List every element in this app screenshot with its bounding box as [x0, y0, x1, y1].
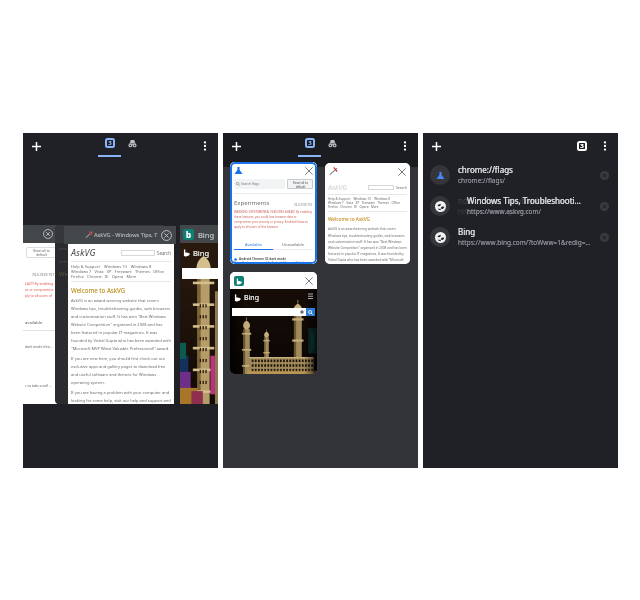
button[interactable]: Close tab [301, 273, 317, 289]
staticText: Reset all to default [33, 249, 50, 257]
staticText: Search [396, 185, 407, 190]
staticText: Help & Support Windows 10 Windows 8 [328, 197, 391, 201]
staticText: Bing [198, 230, 215, 240]
staticText: ontics [59, 259, 71, 264]
button[interactable]: Bing tab [230, 272, 317, 374]
staticText: https://www.bing.com/?toWww=1&redig=C… [458, 238, 592, 247]
button[interactable]: AskVG tab [325, 163, 410, 264]
button[interactable]: More options [392, 133, 418, 159]
staticText: AskVG is an award winning website that c… [71, 298, 171, 351]
button[interactable]: Bing tab [180, 225, 218, 404]
button[interactable]: Tabs [569, 133, 595, 159]
button[interactable]: New tab [223, 133, 249, 159]
button[interactable]: ndows Tips, Troubleshooti… [423, 190, 618, 221]
staticText: LAZY! By enabling se or compromise ply t… [25, 281, 54, 298]
staticText: ndows Tips, Troubleshooti… [458, 195, 563, 206]
staticText: Search flags [241, 182, 260, 186]
staticText: AskVG is an award winning website that c… [328, 227, 407, 264]
button[interactable]: Close tab [597, 168, 611, 182]
staticText: r so tabs scroll ... [25, 383, 52, 388]
staticText: Reset all to default [293, 181, 308, 188]
button[interactable]: Close tab [301, 163, 317, 179]
staticText: 3 [580, 142, 584, 150]
button[interactable]: Experiments tab [230, 162, 317, 264]
button[interactable]: Close tab [40, 226, 56, 242]
staticText: Bing [193, 248, 210, 258]
staticText: Welcome to AskVG [71, 286, 126, 294]
button[interactable]: Close tab [597, 230, 611, 244]
staticText: Windows Tips, Troubleshooti… [467, 195, 581, 206]
button[interactable]: More options [192, 133, 218, 159]
button[interactable]: New tab [423, 133, 449, 159]
button[interactable]: chrome://flags [423, 159, 618, 190]
staticText: AskVG - Windows Tips, T [94, 231, 158, 239]
button[interactable]: More options [592, 133, 618, 159]
staticText: 74.0.3729.157 [294, 203, 313, 207]
staticText: Bing [244, 293, 259, 303]
staticText: WARNING: EXPERIMENTAL FEATURES AHEAD! By… [234, 210, 313, 229]
button[interactable]: Tabs [97, 133, 123, 156]
staticText: available [25, 320, 43, 326]
button[interactable]: Experiments tab [23, 225, 57, 404]
staticText: Bing [458, 226, 476, 237]
staticText: ontics Vista [59, 246, 87, 251]
staticText: Windows 7 Vista XP Freeware Themes Offic… [328, 201, 400, 205]
staticText: 3 [308, 139, 312, 147]
staticText: Android Chrome UI dark mode [239, 257, 286, 261]
staticText: If you are new here, you should first ch… [71, 356, 171, 385]
staticText: Welcome to Ask [59, 270, 104, 278]
staticText: AskVG [328, 183, 347, 192]
staticText: Search [157, 250, 171, 256]
button[interactable]: AskVG - Windows Tips tab [64, 226, 176, 404]
staticText: b [186, 229, 192, 240]
staticText: 3 [108, 139, 112, 147]
staticText: http://www.askvg.com/ [458, 207, 529, 216]
staticText: Windows 7 Vista XP Freeware Themes Offic… [71, 269, 165, 274]
staticText: https://www.askvg.com/ [467, 207, 542, 216]
button[interactable]: Incognito tabs [119, 133, 145, 156]
staticText: If you are having a problem with your co… [71, 390, 171, 403]
button[interactable]: Bing [423, 221, 618, 252]
staticText: AskVG [71, 247, 96, 259]
staticText: dark mode thro… [25, 344, 53, 349]
staticText: chrome://flags/ [458, 176, 506, 185]
staticText: If enabled, user can enable Android Chro… [234, 261, 313, 264]
button[interactable]: New tab [23, 133, 49, 159]
staticText: Available [245, 242, 262, 247]
button[interactable]: Close tab [597, 199, 611, 213]
staticText: chrome://flags [458, 164, 513, 175]
staticText: 74.0.3729.157 [32, 272, 55, 277]
button[interactable]: Incognito tabs [319, 133, 345, 156]
staticText: Experiments [234, 199, 270, 207]
button[interactable]: Close tab [158, 227, 175, 244]
staticText: Firefox Chrome IE Opera More [71, 274, 137, 279]
button[interactable]: Tabs [297, 133, 323, 156]
staticText: Help & Support Windows 10 Windows 8 [71, 264, 152, 269]
staticText: Welcome to AskVG [328, 216, 371, 223]
staticText: AskVG - [71, 229, 98, 239]
staticText: Firefox Chrome IE Opera More [328, 205, 379, 209]
button[interactable]: Close tab [394, 164, 410, 180]
staticText: Unavailable [282, 242, 304, 247]
